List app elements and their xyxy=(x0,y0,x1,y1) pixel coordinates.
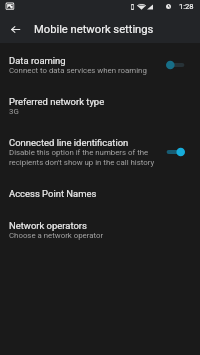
button[interactable]: Data roaming xyxy=(0,45,200,86)
staticText: Access Point Names xyxy=(9,188,97,199)
staticText: 3G xyxy=(9,107,19,116)
button[interactable]: Access Point Names xyxy=(0,178,200,210)
staticText: Choose a network operator xyxy=(9,231,104,240)
staticText: Network operators xyxy=(9,220,87,231)
staticText: Data roaming xyxy=(9,55,66,66)
button[interactable]: Toggle on xyxy=(166,147,185,157)
button[interactable]: Network operators xyxy=(0,210,200,251)
staticText: 1:28 xyxy=(179,2,194,11)
button[interactable]: Back xyxy=(4,18,26,40)
button[interactable]: Toggle off xyxy=(166,60,185,70)
staticText: Connect to data services when roaming xyxy=(9,66,147,75)
staticText: Disable this option if the numbers of th… xyxy=(9,148,159,167)
button[interactable]: Preferred network type xyxy=(0,86,200,127)
button[interactable]: Connected line identification xyxy=(0,127,200,178)
staticText: Connected line identification xyxy=(9,137,129,148)
staticText: Preferred network type xyxy=(9,96,105,107)
staticText: Mobile network settings xyxy=(34,23,154,36)
